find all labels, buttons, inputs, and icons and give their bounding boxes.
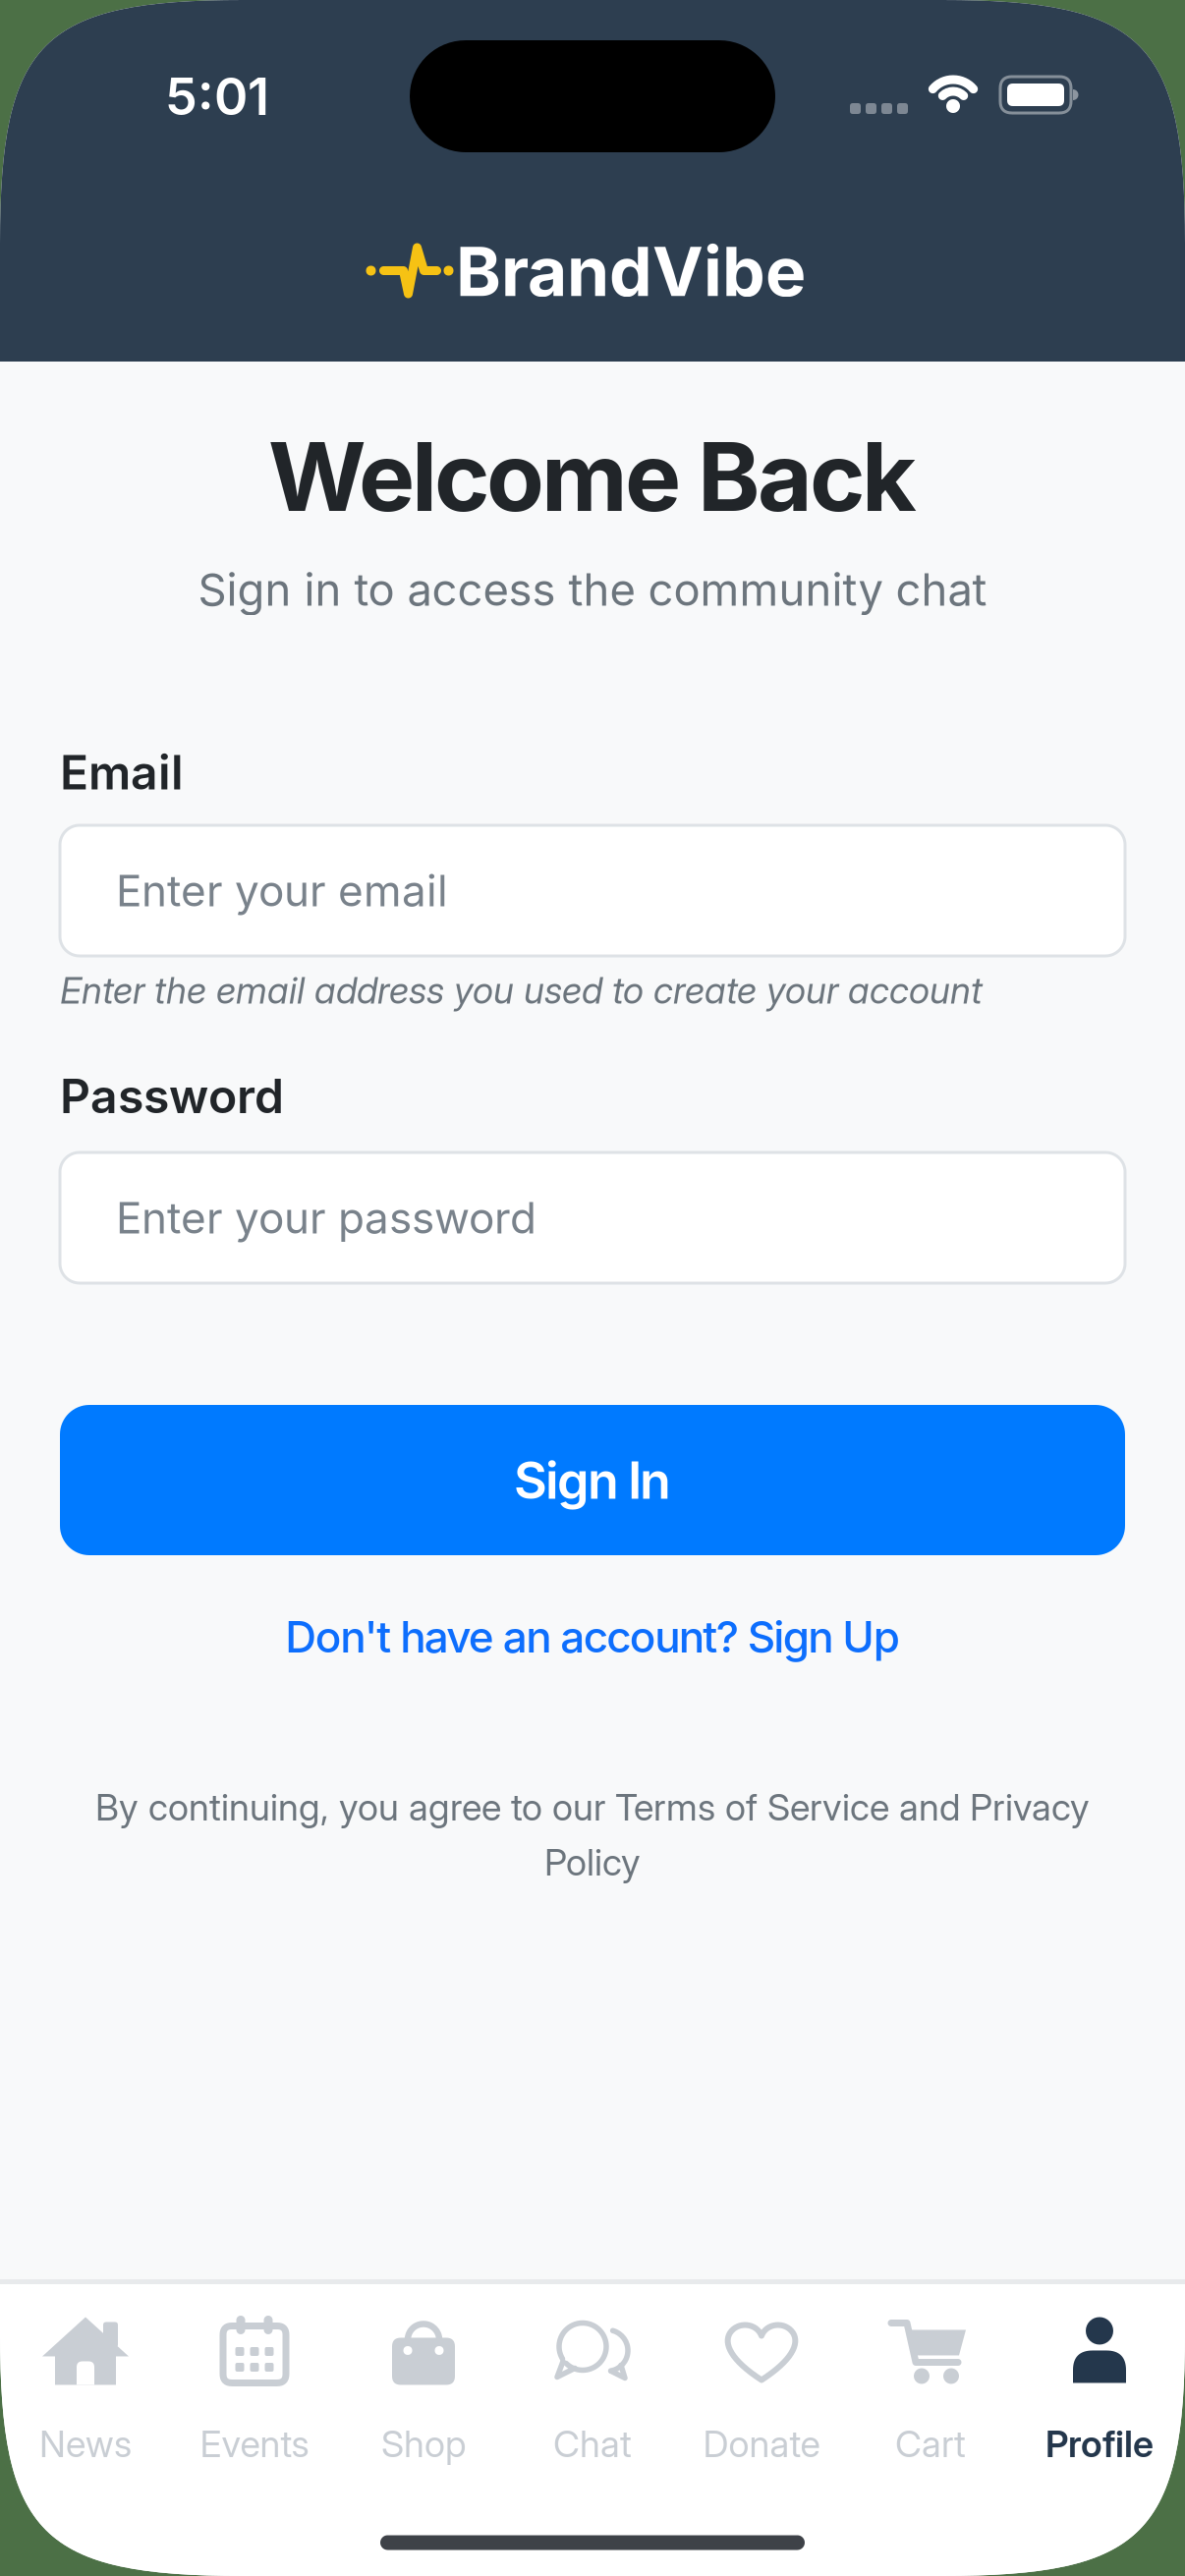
button[interactable]: Events <box>170 2311 339 2468</box>
button[interactable]: Sign In <box>60 1405 1125 1555</box>
button[interactable]: Profile <box>1015 2311 1184 2468</box>
staticText: Enter your email <box>116 865 448 916</box>
staticText: Sign In <box>514 1450 671 1510</box>
staticText: Password <box>60 1068 284 1124</box>
button[interactable]: Chat <box>508 2311 677 2468</box>
button[interactable]: Cart <box>846 2311 1015 2468</box>
button[interactable]: News <box>1 2311 170 2468</box>
button[interactable]: Donate <box>677 2311 846 2468</box>
staticText: 5:01 <box>165 66 269 126</box>
staticText: Policy <box>544 1841 641 1884</box>
staticText: Enter the email address you used to crea… <box>60 969 983 1012</box>
staticText: Shop <box>381 2422 466 2465</box>
staticText: Profile <box>1045 2422 1154 2465</box>
staticText: BrandVibe <box>456 231 806 311</box>
staticText: Welcome Back <box>268 421 917 532</box>
staticText: Donate <box>703 2422 820 2465</box>
staticText: Chat <box>553 2422 632 2465</box>
staticText: Email <box>60 744 184 800</box>
staticText: Don't have an account? Sign Up <box>285 1611 900 1662</box>
staticText: Events <box>200 2422 309 2465</box>
staticText: Sign in to access the community chat <box>198 563 987 616</box>
button[interactable]: Shop <box>339 2311 508 2468</box>
button[interactable]: Don't have an account? Sign Up <box>285 1611 900 1662</box>
staticText: Enter your password <box>116 1192 536 1243</box>
staticText: News <box>39 2422 132 2465</box>
staticText: By continuing, you agree to our Terms of… <box>95 1786 1090 1829</box>
staticText: Cart <box>895 2422 966 2465</box>
